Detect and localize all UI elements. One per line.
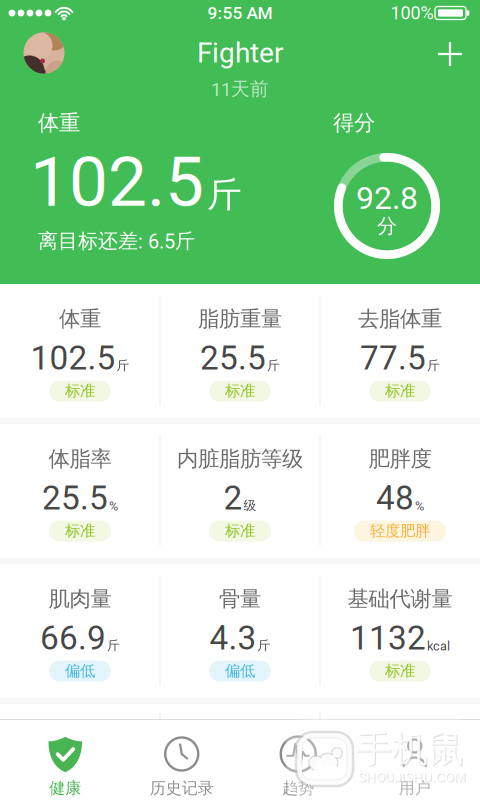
staticText: 48	[376, 478, 414, 518]
staticText: 25.5	[42, 478, 108, 518]
button[interactable]: 肌肉量	[0, 564, 160, 698]
staticText: 偏低	[225, 661, 255, 681]
staticText: 趋势	[282, 778, 314, 798]
button[interactable]: 内脏脂肪等级	[160, 424, 320, 558]
staticText: 斤	[107, 638, 120, 654]
staticText: 102.5	[30, 338, 115, 378]
staticText: 体重	[38, 110, 80, 136]
button[interactable]: 历史记录	[123, 719, 240, 800]
staticText: 骨量	[219, 586, 261, 612]
button[interactable]: 健康	[7, 719, 123, 800]
button[interactable]: 体脂率	[0, 424, 160, 558]
staticText: 肥胖度	[368, 446, 431, 472]
staticText: 标准	[65, 381, 95, 401]
button[interactable]: 肥胖度	[320, 424, 480, 558]
staticText: 斤	[257, 638, 270, 654]
staticText: 标准	[225, 521, 255, 541]
staticText: 基础代谢量	[347, 586, 452, 612]
staticText: SHOUJISHU.COM	[359, 770, 467, 786]
staticText: 体脂率	[48, 446, 111, 472]
staticText: 斤	[207, 173, 242, 217]
staticText: 历史记录	[150, 778, 214, 798]
staticText: 体重	[59, 306, 101, 332]
staticText: 1132	[350, 618, 426, 658]
staticText: 得分	[333, 110, 375, 136]
staticText: 11天前	[211, 77, 269, 101]
button[interactable]: 趋势	[240, 719, 356, 800]
staticText: 斤	[427, 358, 440, 374]
staticText: 25.5	[200, 338, 266, 378]
staticText: 离目标还差: 6.5斤	[38, 228, 195, 254]
staticText: Fighter	[197, 37, 283, 69]
staticText: 4.3	[209, 618, 256, 658]
button[interactable]: 体重	[0, 284, 160, 418]
staticText: 77.5	[360, 338, 426, 378]
button[interactable]: 去脂体重	[320, 284, 480, 418]
staticText: 偏低	[65, 661, 95, 681]
staticText: 级	[243, 498, 256, 514]
staticText: 手机鼠	[357, 727, 465, 773]
staticText: 92.8	[356, 179, 418, 217]
staticText: 标准	[385, 661, 415, 681]
staticText: 66.9	[40, 618, 106, 658]
staticText: 标准	[225, 381, 255, 401]
button[interactable]: 用户头像	[23, 32, 64, 73]
staticText: %	[109, 499, 118, 513]
staticText: 去脂体重	[358, 306, 442, 332]
staticText: 标准	[385, 381, 415, 401]
staticText: 斤	[116, 358, 129, 374]
staticText: 轻度肥胖	[370, 521, 430, 541]
staticText: %	[415, 499, 424, 513]
staticText: 2	[223, 478, 242, 518]
staticText: 手机鼠	[356, 726, 464, 772]
button[interactable]: 基础代谢量	[320, 564, 480, 698]
button[interactable]: 添加	[437, 41, 463, 67]
staticText: 标准	[65, 521, 95, 541]
staticText: 斤	[267, 358, 280, 374]
staticText: kcal	[427, 639, 450, 653]
staticText: 健康	[49, 778, 81, 798]
button[interactable]: 脂肪重量	[160, 284, 320, 418]
staticText: 100%	[390, 2, 433, 24]
staticText: 分	[377, 213, 397, 239]
staticText: 102.5	[30, 141, 204, 223]
button[interactable]: 骨量	[160, 564, 320, 698]
button[interactable]: 用户	[356, 719, 473, 800]
staticText: 内脏脂肪等级	[177, 446, 303, 472]
staticText: 9:55 AM	[207, 3, 272, 23]
staticText: 脂肪重量	[198, 306, 282, 332]
staticText: SHOUJISHU.COM	[358, 769, 466, 785]
staticText: 用户	[399, 778, 431, 798]
staticText: 肌肉量	[48, 586, 111, 612]
